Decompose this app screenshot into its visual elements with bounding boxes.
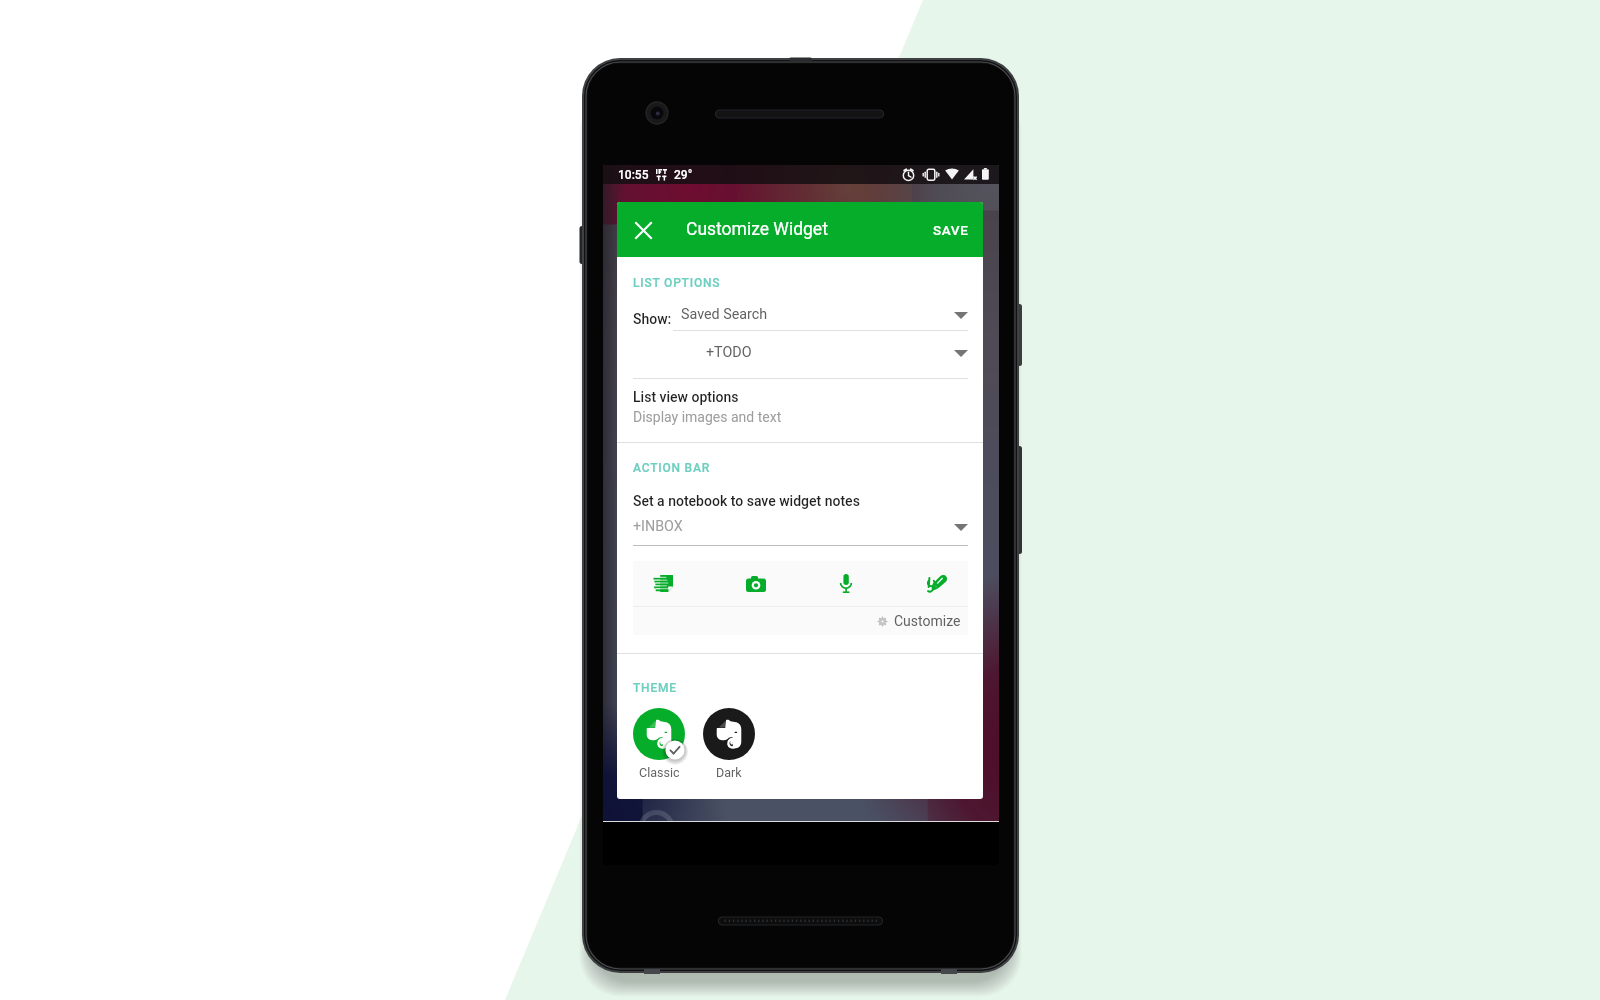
button[interactable]: SAVE (919, 209, 983, 251)
staticText: 10:55 (618, 168, 649, 182)
staticText: Show: (633, 311, 672, 327)
button[interactable]: New note (644, 561, 686, 606)
staticText: 29° (674, 168, 693, 182)
staticText: +TODO (706, 344, 752, 361)
button[interactable]: Close (626, 213, 660, 247)
button[interactable]: Record audio (825, 561, 867, 606)
staticText: SAVE (933, 222, 969, 238)
button[interactable]: Dark (703, 708, 755, 780)
staticText: List view options (633, 389, 739, 405)
staticText: THEME (633, 681, 677, 695)
staticText: +INBOX (633, 518, 683, 535)
button[interactable]: Saved Search (673, 306, 968, 331)
staticText: Dark (716, 765, 742, 780)
staticText: ACTION BAR (633, 461, 711, 475)
staticText: Display images and text (633, 409, 782, 425)
button[interactable]: Handwrite (916, 561, 958, 606)
staticText: Classic (639, 765, 680, 780)
button[interactable]: Take photo (735, 561, 777, 606)
staticText: Customize Widget (686, 219, 828, 240)
button[interactable]: Classic (633, 708, 685, 780)
staticText: Saved Search (681, 306, 768, 323)
button[interactable]: +TODO (633, 344, 968, 361)
button[interactable]: Customize (633, 607, 968, 635)
button[interactable]: List view options (633, 389, 968, 425)
staticText: Customize (894, 613, 961, 629)
staticText: LIST OPTIONS (633, 276, 721, 290)
staticText: Set a notebook to save widget notes (633, 493, 860, 509)
button[interactable]: +INBOX (633, 518, 968, 546)
